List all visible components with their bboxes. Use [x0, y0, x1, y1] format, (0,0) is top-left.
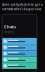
staticText: Some pretty details to get a [2, 3, 43, 6]
staticText: Recent [4, 30, 14, 34]
staticText: Chats [4, 24, 16, 29]
staticText: overview what's busy at now [2, 7, 41, 11]
